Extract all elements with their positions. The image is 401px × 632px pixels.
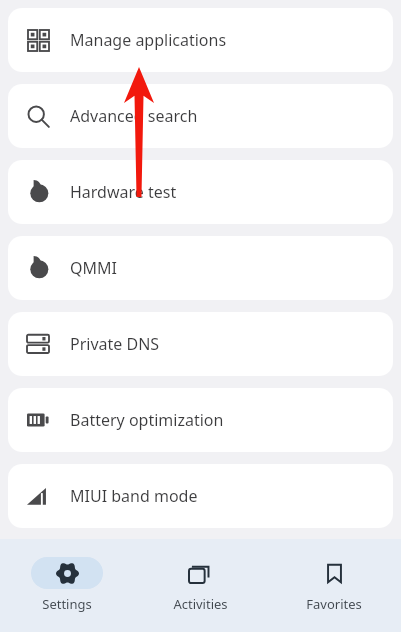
staticText: Hardware test [70,181,177,203]
button[interactable]: Private DNS [8,312,393,376]
button[interactable]: QMMI [8,236,393,300]
button[interactable]: Favorites [267,555,401,615]
button[interactable]: Hardware test [8,160,393,224]
staticText: Settings [42,595,92,613]
staticText: Favorites [306,595,362,613]
button[interactable]: Settings [0,555,133,615]
button[interactable]: MIUI band mode [8,464,393,528]
button[interactable]: Manage applications [8,8,393,72]
button[interactable]: Activities [133,555,267,615]
button[interactable]: Advanced search [8,84,393,148]
staticText: Manage applications [70,29,227,51]
button[interactable]: Battery optimization [8,388,393,452]
other: Settings [56,562,79,585]
other: Activities [189,562,212,585]
staticText: Private DNS [70,333,160,355]
staticText: QMMI [70,257,117,279]
staticText: Advanced search [70,105,198,127]
staticText: Activities [173,595,228,613]
other: Favorites [323,562,346,585]
staticText: MIUI band mode [70,485,198,507]
staticText: Battery optimization [70,409,224,431]
